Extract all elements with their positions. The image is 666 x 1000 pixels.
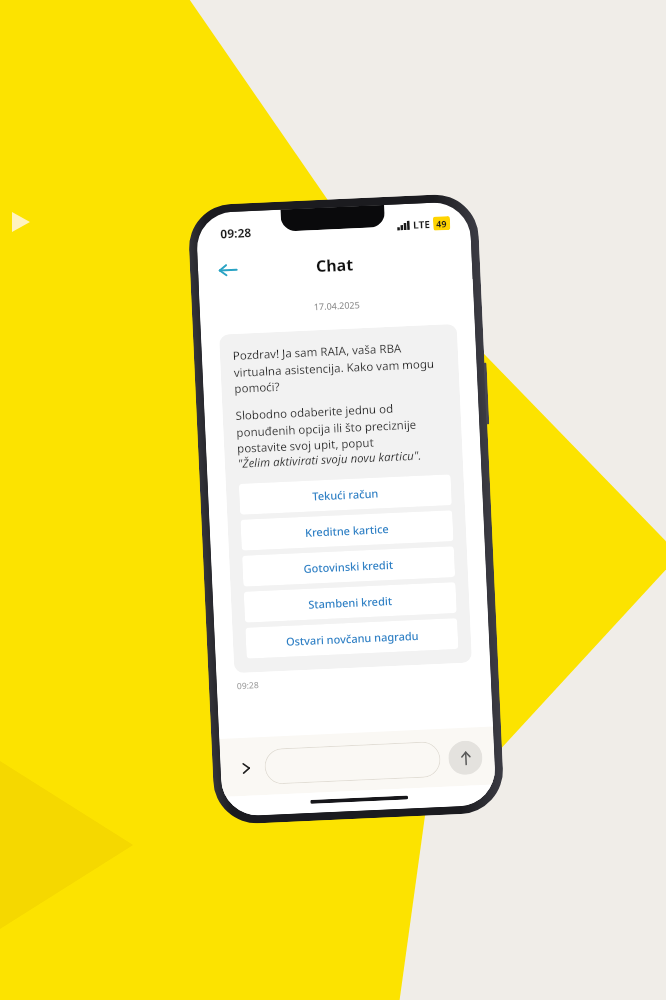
staticText: Chat — [315, 253, 354, 277]
button[interactable]: Ostvari novčanu nagradu — [245, 618, 458, 659]
button[interactable] — [264, 741, 441, 785]
button[interactable]: Gotovinski kredit — [242, 546, 455, 587]
staticText: Stambeni kredit — [308, 593, 392, 612]
staticText: Slobodno odaberite jednu od ponuđenih op… — [235, 398, 449, 456]
staticText: "Želim aktivirati svoju novu karticu". — [237, 447, 422, 472]
staticText: 49 — [436, 217, 447, 230]
staticText: Gotovinski kredit — [303, 557, 394, 576]
staticText: 09:28 — [220, 224, 252, 241]
staticText: 09:28 — [237, 679, 259, 692]
button[interactable]: Send — [448, 740, 483, 776]
staticText: Tekući račun — [312, 485, 379, 503]
staticText: Ostvari novčanu nagradu — [286, 628, 419, 649]
button[interactable]: Back — [207, 249, 249, 291]
staticText: Pozdrav! Ja sam RAIA, vaša RBA virtualna… — [233, 338, 447, 396]
staticText: 17.04.2025 — [200, 293, 474, 317]
staticText: Kreditne kartice — [305, 521, 389, 540]
button[interactable]: Tekući račun — [239, 474, 452, 515]
button[interactable]: Stambeni kredit — [244, 582, 457, 623]
button[interactable]: Kreditne kartice — [240, 510, 454, 551]
button[interactable]: Expand options — [232, 754, 259, 781]
staticText: LTE — [413, 217, 430, 232]
